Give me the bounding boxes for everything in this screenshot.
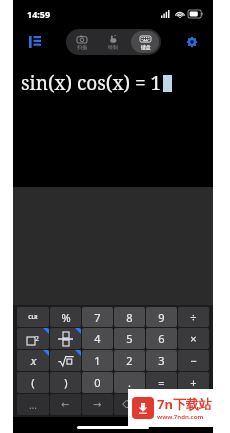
button[interactable]: Enter [146,394,209,415]
staticText: × [190,331,197,346]
staticText: 绘制 [108,44,118,50]
button[interactable]: 6 [146,328,177,349]
button[interactable]: 4 [82,328,113,349]
staticText: x [30,353,37,368]
button[interactable]: 7 [82,307,113,327]
button[interactable]: − [178,350,209,371]
staticText: 8 [126,310,133,325]
button[interactable]: History [22,29,48,55]
button[interactable]: More [17,394,49,415]
staticText: 0 [94,375,101,390]
button[interactable]: Left [50,394,81,415]
button[interactable]: 1 [82,350,113,371]
button[interactable]: 9 [146,307,177,327]
button[interactable]: 绘制 [99,31,127,53]
button[interactable]: Math key [17,328,49,349]
button[interactable]: 扫描 [68,31,95,53]
staticText: % [61,310,71,325]
button[interactable]: ( [17,372,49,393]
staticText: 2 [126,353,133,368]
staticText: 2 [35,334,40,344]
staticText: → [93,399,102,411]
staticText: = [158,375,165,390]
button[interactable]: Settings [179,29,205,55]
staticText: 6 [158,331,165,346]
button[interactable]: 0 [82,372,113,393]
staticText: 1 [94,353,101,368]
staticText: + [190,375,197,390]
staticText: CLR [28,314,38,321]
staticText: 7 [94,310,101,325]
button[interactable]: Right [82,394,113,415]
staticText: − [190,353,197,368]
staticText: 扫描 [77,44,87,50]
staticText: www.7ndn.com [157,413,204,421]
staticText: ) [64,375,68,390]
button[interactable]: + [178,372,209,393]
button[interactable]: ÷ [178,307,209,327]
staticText: ← [61,399,70,411]
staticText: 键盘 [141,44,151,50]
staticText: 5 [126,331,133,346]
staticText: 3 [158,353,165,368]
button[interactable]: 3 [146,350,177,371]
staticText: 4 [94,331,101,346]
staticText: 9 [158,310,165,325]
button[interactable]: × [178,328,209,349]
staticText: 7n下载站 [157,395,212,413]
button[interactable]: . [114,372,145,393]
button[interactable]: ) [50,372,81,393]
staticText: … [29,398,37,412]
staticText: ÷ [190,310,197,325]
button[interactable]: = [146,372,177,393]
staticText: ( [31,375,35,390]
button[interactable]: x [17,350,49,371]
button[interactable]: Math key [50,328,81,349]
button[interactable]: CLR [17,307,49,327]
staticText: ⌫ [122,399,137,411]
button[interactable]: % [50,307,81,327]
button[interactable]: Backspace [114,394,145,415]
button[interactable]: 8 [114,307,145,327]
button[interactable]: 5 [114,328,145,349]
button[interactable]: 键盘 [131,31,159,53]
staticText: 14:59 [27,8,51,20]
staticText: sin(x) cos(x) = 1 [21,70,162,96]
button[interactable]: 2 [114,350,145,371]
button[interactable]: Math key [50,350,81,371]
staticText: . [128,375,131,390]
